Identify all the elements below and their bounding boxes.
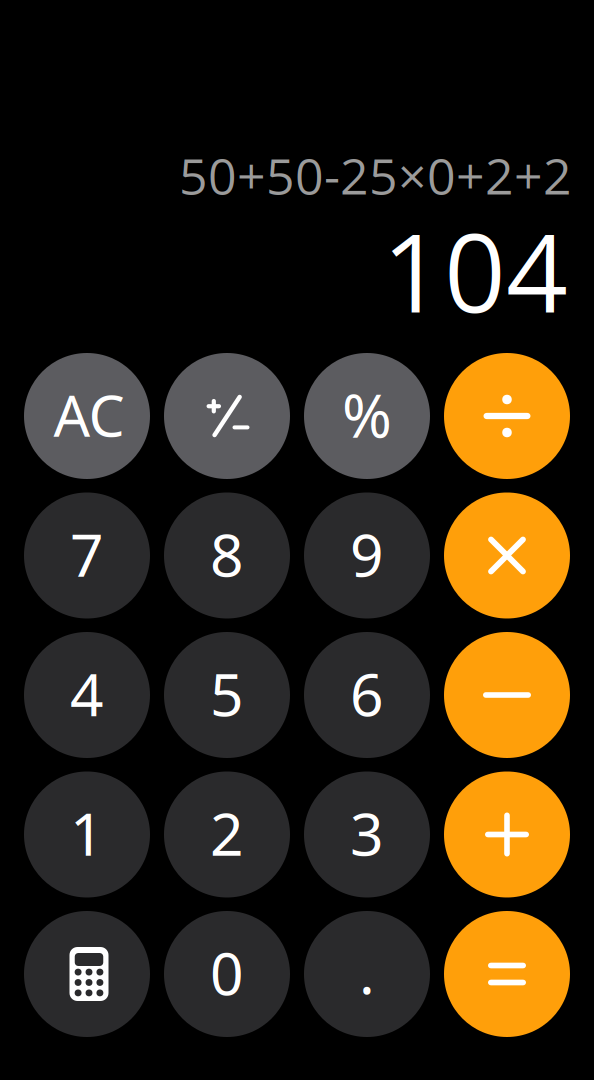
button[interactable]: 9	[304, 492, 430, 618]
staticText: AC	[53, 376, 124, 452]
button[interactable]: 4	[24, 632, 150, 758]
button[interactable]: 7	[24, 492, 150, 618]
staticText: 2	[210, 794, 244, 872]
button[interactable]: Multiply	[444, 492, 570, 618]
button[interactable]: Plus minus	[164, 353, 290, 479]
staticText: 3	[350, 794, 384, 872]
button[interactable]: Equals	[444, 911, 570, 1037]
button[interactable]: AC	[24, 353, 150, 479]
staticText: %	[342, 375, 392, 454]
staticText: 104	[382, 197, 568, 344]
button[interactable]: 1	[24, 771, 150, 897]
button[interactable]: Plus	[444, 771, 570, 897]
staticText: 4	[70, 654, 104, 732]
button[interactable]: 6	[304, 632, 430, 758]
button[interactable]: 5	[164, 632, 290, 758]
staticText: 50+50-25×0+2+2	[179, 141, 572, 209]
staticText: 1	[70, 794, 104, 872]
staticText: 6	[350, 654, 384, 732]
staticText: 0	[210, 933, 244, 1011]
button[interactable]: %	[304, 353, 430, 479]
button[interactable]: .	[304, 911, 430, 1037]
button[interactable]: Calculator modes	[24, 911, 150, 1037]
button[interactable]: 2	[164, 771, 290, 897]
button[interactable]: 8	[164, 492, 290, 618]
button[interactable]: Minus	[444, 632, 570, 758]
staticText: .	[359, 932, 375, 1010]
button[interactable]: 0	[164, 911, 290, 1037]
staticText: 8	[210, 515, 244, 593]
button[interactable]: Divide	[444, 353, 570, 479]
button[interactable]: 3	[304, 771, 430, 897]
staticText: 7	[70, 515, 104, 593]
staticText: 5	[210, 654, 244, 732]
staticText: 9	[350, 515, 384, 593]
